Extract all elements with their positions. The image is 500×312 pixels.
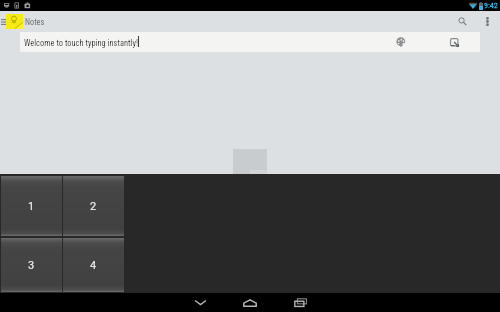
button[interactable]: 4 (63, 238, 124, 292)
staticText: 9:42 (484, 1, 498, 10)
button[interactable]: 3 (1, 238, 62, 292)
staticText: 1 (28, 200, 35, 213)
button[interactable]: 1 (1, 176, 62, 236)
button[interactable]: More options (477, 11, 498, 32)
button[interactable]: Home (230, 293, 270, 312)
staticText: 2 (90, 200, 97, 213)
button[interactable]: Note colour (390, 32, 412, 52)
button[interactable]: Notes app icon (6, 14, 23, 29)
button[interactable]: Expand note (443, 32, 465, 52)
staticText: 4 (90, 259, 97, 272)
staticText: 3 (28, 259, 35, 272)
button[interactable]: Welcome to touch typing instantly! (20, 32, 480, 52)
button[interactable]: Search (452, 11, 473, 32)
button[interactable]: 2 (63, 176, 124, 236)
button[interactable]: Recent apps (280, 293, 320, 312)
button[interactable]: Hide keyboard (180, 293, 220, 312)
staticText: Welcome to touch typing instantly! (24, 38, 138, 48)
staticText: Notes (25, 17, 45, 27)
button[interactable]: Navigate up (0, 11, 7, 32)
